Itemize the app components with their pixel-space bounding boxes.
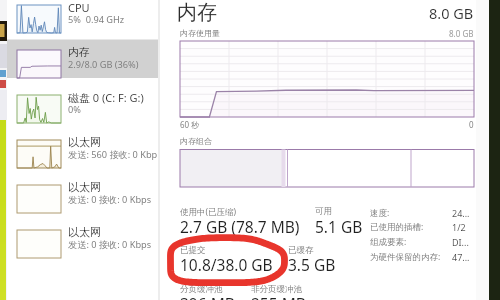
staticText: DI...: [452, 236, 469, 248]
staticText: 发送: 0 接收: 0 Kbps: [68, 238, 152, 251]
staticText: 速度:: [370, 207, 390, 219]
staticText: 组成要素:: [370, 236, 407, 248]
staticText: 分页缓冲池: [180, 284, 223, 295]
staticText: 396 MB: [180, 293, 235, 300]
staticText: 0: [469, 119, 474, 130]
button[interactable]: 以太网: [7, 179, 158, 223]
button[interactable]: CPU: [7, 0, 158, 43]
staticText: 255 MB: [251, 293, 306, 300]
staticText: CPU: [68, 0, 90, 15]
staticText: 发送: 0 接收: 0 Kbps: [68, 193, 152, 206]
staticText: 内存使用量: [180, 28, 220, 38]
staticText: 已提交: [180, 245, 206, 256]
button[interactable]: 内存: [7, 44, 158, 88]
button[interactable]: 内存: [0, 0, 474, 26]
staticText: 非分页缓冲池: [251, 284, 302, 295]
staticText: 47...: [452, 251, 470, 263]
button[interactable]: 以太网: [7, 224, 158, 268]
staticText: 2.9/8.0 GB (36%): [68, 58, 139, 71]
staticText: 已使用的插槽:: [370, 221, 424, 233]
button[interactable]: 磁盘 0 (C: F: G:): [7, 89, 158, 133]
staticText: 5% 0.94 GHz: [68, 13, 125, 26]
staticText: 为硬件保留的内存:: [370, 251, 441, 263]
staticText: 24...: [452, 207, 470, 219]
staticText: 8.0 GB: [449, 28, 474, 39]
staticText: 8.0 GB: [429, 3, 474, 23]
staticText: 3.5 GB: [288, 254, 336, 275]
staticText: 2.7 GB (78.7 MB): [180, 216, 300, 237]
staticText: 使用中(已压缩): [180, 206, 237, 218]
staticText: 内存: [177, 0, 217, 25]
staticText: 已缓存: [288, 245, 314, 256]
staticText: 磁盘 0 (C: F: G:): [68, 90, 144, 105]
staticText: 5.1 GB: [315, 216, 363, 237]
staticText: 发送: 560 接收: 0 Kbp: [68, 148, 158, 161]
staticText: 10.8/38.0 GB: [180, 254, 273, 275]
staticText: 以太网: [68, 225, 101, 239]
staticText: 以太网: [68, 135, 101, 149]
staticText: 内存组合: [180, 136, 212, 146]
staticText: 0%: [68, 103, 81, 116]
other: Annotation: [0, 0, 500, 300]
button[interactable]: 以太网: [7, 134, 158, 178]
staticText: 60 秒: [180, 119, 200, 130]
staticText: 内存: [68, 45, 90, 59]
staticText: 以太网: [68, 180, 101, 194]
staticText: 1/2: [452, 221, 466, 233]
staticText: 可用: [315, 206, 332, 217]
